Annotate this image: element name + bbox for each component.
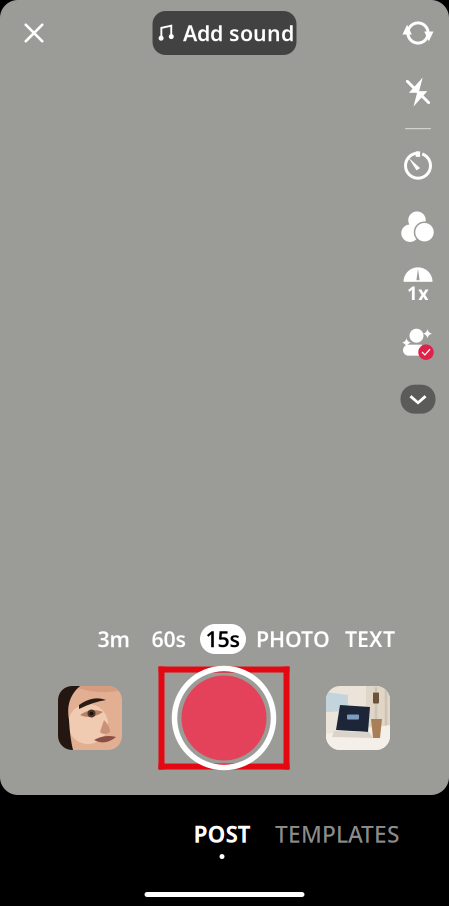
button[interactable]: Close	[12, 11, 56, 55]
button[interactable]: Flash off	[396, 70, 440, 114]
button[interactable]: 60s	[141, 624, 196, 654]
button[interactable]: Timer	[396, 143, 440, 187]
button[interactable]: Flip camera	[396, 11, 440, 55]
button[interactable]: 3m	[85, 624, 141, 654]
button[interactable]: Speed	[396, 264, 440, 308]
button[interactable]: Enhance	[396, 322, 440, 366]
staticText: Add sound	[183, 19, 294, 47]
button[interactable]: Filters	[396, 205, 440, 249]
button[interactable]: TEMPLATES	[278, 821, 396, 857]
button[interactable]: Effects	[58, 686, 122, 750]
staticText: PHOTO	[256, 625, 330, 653]
staticText: 1x	[407, 281, 429, 306]
button[interactable]: TEXT	[336, 624, 403, 654]
staticText: TEMPLATES	[275, 819, 399, 849]
staticText: 60s	[151, 625, 186, 653]
button[interactable]: More options	[396, 379, 440, 419]
button[interactable]: PHOTO	[249, 624, 336, 654]
button[interactable]: Add sound	[152, 11, 296, 55]
staticText: TEXT	[345, 625, 395, 653]
button[interactable]: Record	[158, 666, 289, 769]
staticText: 15s	[205, 625, 240, 653]
staticText: POST	[193, 819, 250, 849]
button[interactable]: Upload	[326, 686, 390, 750]
button[interactable]: 15s	[196, 624, 249, 654]
button[interactable]: POST	[187, 821, 257, 857]
staticText: 3m	[97, 625, 129, 653]
